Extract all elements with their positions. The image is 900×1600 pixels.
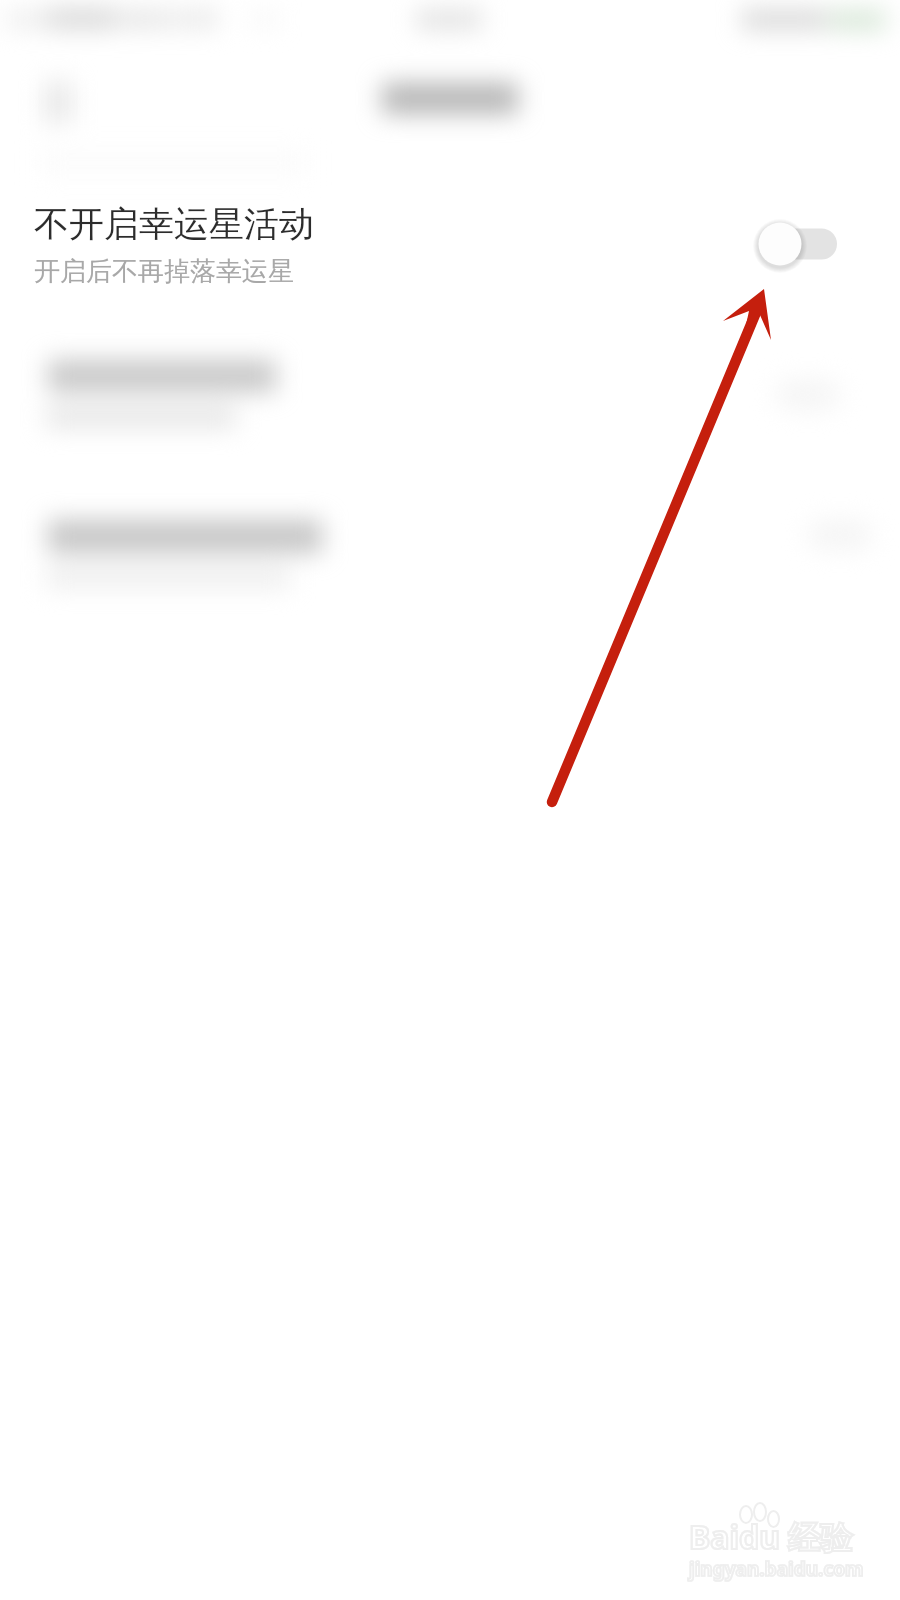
staticText: 开启后不再掉落幸运星 bbox=[34, 255, 294, 288]
staticText: 不开启幸运星活动 bbox=[34, 202, 314, 246]
button[interactable]: 不开启幸运星活动 bbox=[0, 180, 900, 305]
button[interactable]: Setting row 3 bbox=[0, 490, 900, 625]
button[interactable]: Toggle lucky star activity bbox=[748, 209, 850, 279]
staticText: jingyan.baidu.com bbox=[689, 1556, 864, 1582]
button[interactable]: Back bbox=[20, 62, 100, 142]
staticText: Baidu 经验 bbox=[689, 1515, 853, 1559]
button[interactable]: Setting row 2 bbox=[0, 330, 900, 465]
